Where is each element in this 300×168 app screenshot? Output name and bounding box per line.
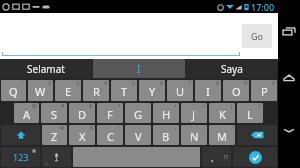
button[interactable]: $ [69,125,95,145]
button[interactable]: Delete [237,125,277,145]
button[interactable]: Enter [233,147,277,167]
button[interactable]: 123 [1,147,40,167]
button[interactable]: " [97,125,123,145]
staticText: + [174,103,177,110]
button[interactable]: 5 [111,80,137,101]
staticText: I [206,84,210,99]
staticText: Y [149,84,156,99]
staticText: 123 [13,151,29,163]
button[interactable]: Shift [1,125,40,145]
staticText: / [231,125,233,132]
staticText: , [46,157,48,167]
button[interactable]: : [125,125,151,145]
button[interactable]: 4 [83,80,109,101]
button[interactable]: @ [14,103,39,123]
button[interactable]: 8 [195,80,221,101]
staticText: @ [32,103,37,110]
button[interactable]: & [69,103,95,123]
staticText: ) [259,103,261,110]
staticText: * [118,103,121,110]
staticText: N [190,129,199,144]
button[interactable]: ( [209,103,235,123]
staticText: # [61,103,65,110]
button[interactable]: 9 [223,80,249,101]
staticText: $ [90,125,93,132]
staticText: S [51,107,58,122]
staticText: A [23,107,31,122]
staticText: Z [51,129,58,144]
button[interactable]: Selamat [0,59,92,78]
staticText: Saya [221,62,243,76]
staticText: !? [224,153,229,161]
staticText: P [261,84,268,99]
staticText: Q [9,84,18,99]
staticText: 0 [272,80,275,87]
button[interactable]: = [181,103,207,123]
staticText: G [134,107,143,122]
staticText: M [217,129,227,144]
staticText: F [107,107,113,122]
button[interactable]: - [125,103,151,123]
staticText: 8 [216,80,219,87]
button[interactable]: I [93,59,185,78]
button[interactable]: ) [237,103,263,123]
button[interactable]: Go [242,24,272,48]
staticText: 7 [188,80,191,87]
button[interactable]: Voice input [42,147,71,167]
staticText: Go [251,30,263,42]
staticText: 5 [132,80,135,87]
staticText: " [118,125,121,132]
staticText: J [192,107,196,122]
staticText: 2 [48,80,51,87]
button[interactable]: . [202,147,231,167]
button[interactable]: Home [279,68,299,88]
staticText: 1 [21,80,24,87]
button[interactable]: / [209,125,235,145]
staticText: : [147,125,149,132]
staticText: H [162,107,171,122]
staticText: V [135,129,142,144]
staticText: O [232,84,241,99]
button[interactable]: % [42,125,67,145]
button[interactable]: 6 [139,80,165,101]
staticText: 3 [76,80,79,87]
button[interactable]: Recents [279,22,299,42]
staticText: L [247,107,253,122]
staticText: B [162,129,170,144]
button[interactable]: 3 [55,80,81,101]
staticText: K [219,107,226,122]
staticText: 4 [104,80,107,87]
staticText: - [147,103,149,110]
button[interactable]: + [153,103,179,123]
staticText: R [93,84,100,99]
staticText: ; [175,125,177,132]
staticText: % [60,125,65,132]
button[interactable]: 0 [251,80,277,101]
staticText: . [211,151,214,165]
button[interactable]: * [97,103,123,123]
staticText: ! [203,125,205,132]
button[interactable]: 7 [167,80,193,101]
staticText: I [137,62,141,76]
button[interactable]: Saya [186,59,278,78]
staticText: C [107,129,114,144]
staticText: & [89,103,93,110]
button[interactable]: 1 [1,80,26,101]
staticText: Selamat [27,62,65,76]
button[interactable]: # [41,103,67,123]
button[interactable]: 2 [28,80,53,101]
staticText: 17:00 [251,1,275,13]
staticText: E [65,84,72,99]
staticText: 6 [160,80,163,87]
staticText: X [79,129,86,144]
staticText: D [78,107,87,122]
button[interactable]: ; [153,125,179,145]
button[interactable]: Back [279,120,299,140]
staticText: ( [231,103,233,110]
staticText: 9 [244,80,247,87]
staticText: W [35,84,46,99]
staticText: T [121,84,128,99]
button[interactable]: ! [181,125,207,145]
staticText: = [202,103,205,110]
